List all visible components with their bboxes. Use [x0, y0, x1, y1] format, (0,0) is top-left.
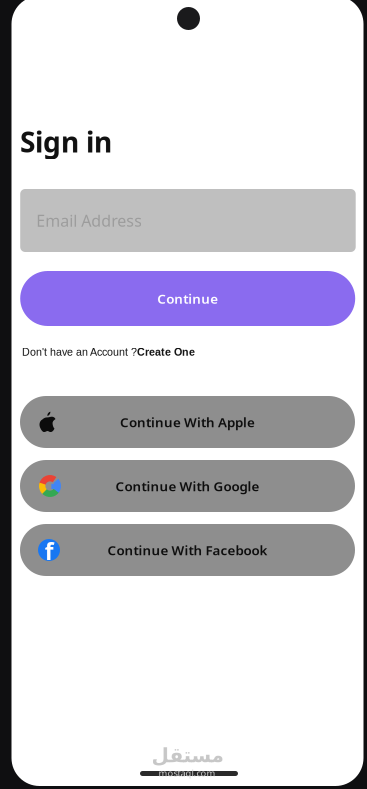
button[interactable]: Continue [20, 271, 355, 326]
staticText: Create One [137, 346, 195, 358]
staticText: مستقل [151, 744, 223, 767]
staticText: f [45, 536, 54, 566]
staticText: Sign in [20, 123, 112, 160]
staticText: mostaql.com [158, 767, 215, 779]
staticText: Continue [157, 290, 218, 307]
button[interactable]: Create One [137, 346, 195, 358]
staticText: Email Address [36, 210, 142, 231]
button[interactable]: Continue With Apple [20, 396, 355, 448]
staticText: Don't have an Account ? [22, 346, 137, 358]
button[interactable]: f [20, 524, 355, 576]
staticText: Continue With Facebook [107, 541, 267, 559]
staticText: Continue With Google [115, 477, 259, 495]
staticText: Continue With Apple [120, 413, 255, 431]
button[interactable]: Email Address [20, 189, 356, 252]
button[interactable]: Continue With Google [20, 460, 355, 512]
